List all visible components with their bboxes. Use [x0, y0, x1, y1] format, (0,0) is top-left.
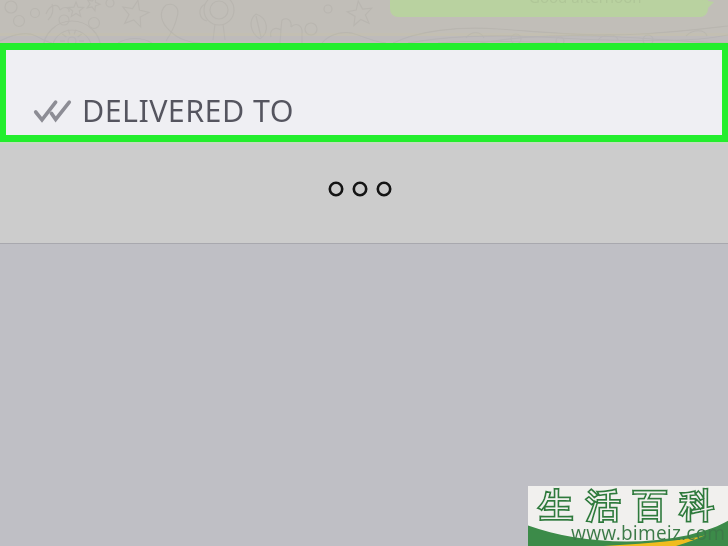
staticText: 生活百科 [532, 485, 720, 528]
button[interactable]: DELIVERED TO [6, 50, 722, 135]
button[interactable]: Loading [326, 179, 394, 199]
staticText: DELIVERED TO [82, 89, 294, 131]
staticText: Good afternoon [529, 0, 642, 7]
staticText: www.bimeiz.com [571, 520, 726, 546]
